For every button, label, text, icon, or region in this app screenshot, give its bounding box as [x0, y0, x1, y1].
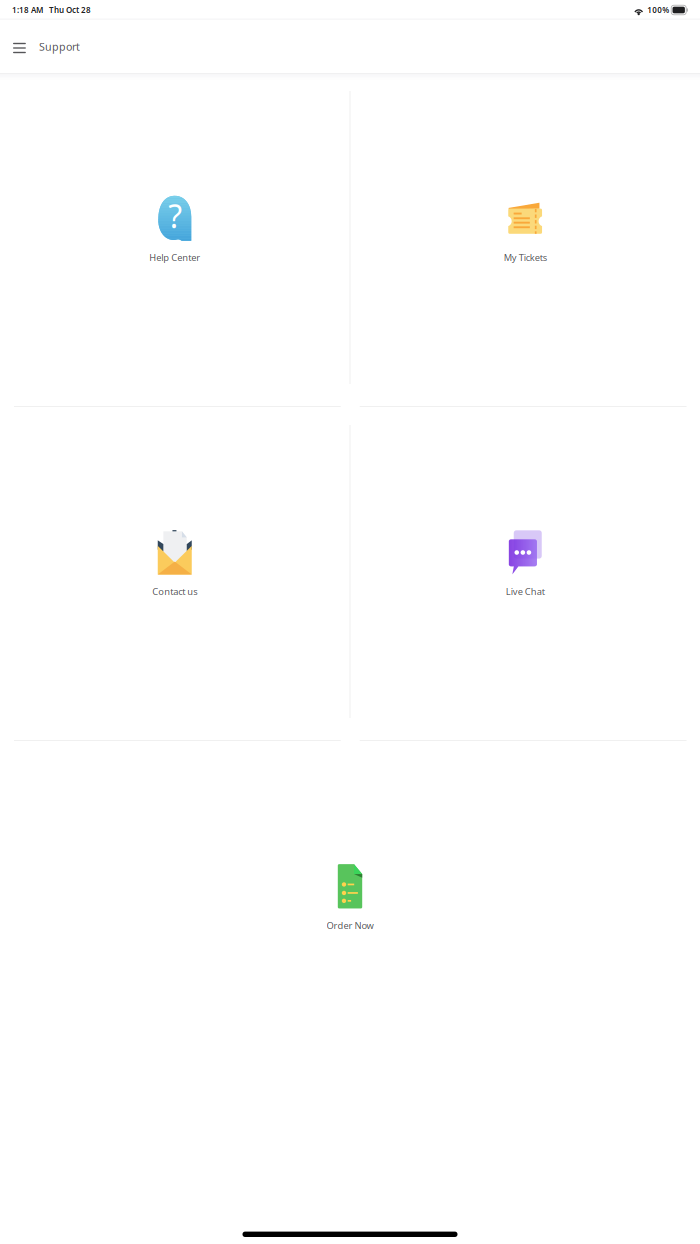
- button[interactable]: Menu: [0, 28, 39, 65]
- staticText: Thu Oct 28: [49, 5, 91, 15]
- staticText: Live Chat: [506, 585, 545, 598]
- button[interactable]: Support: [39, 29, 80, 64]
- staticText: Contact us: [152, 585, 197, 598]
- staticText: 100%: [647, 5, 669, 15]
- staticText: Support: [39, 39, 80, 54]
- button[interactable]: Live Chat: [350, 407, 700, 740]
- staticText: Help Center: [149, 251, 200, 264]
- button[interactable]: Order Now: [0, 741, 700, 1074]
- staticText: My Tickets: [504, 251, 547, 264]
- staticText: ?: [168, 195, 182, 237]
- staticText: Order Now: [326, 919, 373, 932]
- staticText: 1:18 AM: [12, 5, 43, 15]
- button[interactable]: My Tickets: [350, 73, 700, 406]
- button[interactable]: Contact us: [0, 407, 349, 740]
- button[interactable]: ?: [0, 73, 349, 406]
